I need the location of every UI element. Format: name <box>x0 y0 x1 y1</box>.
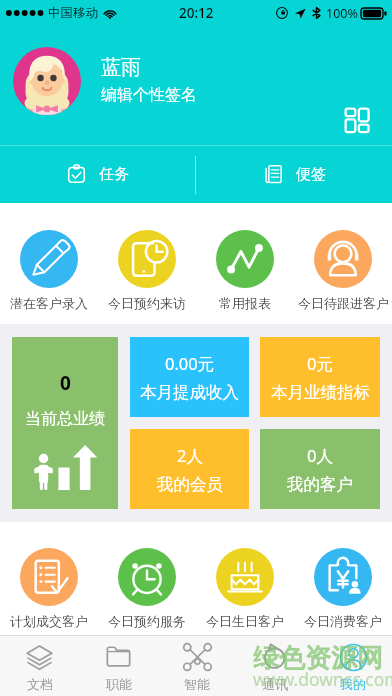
staticText: 中国移动 <box>48 5 98 21</box>
staticText: 本月提成收入 <box>140 382 239 403</box>
staticText: 我的 <box>340 676 366 692</box>
button[interactable]: 潜在客户录入 <box>0 230 98 311</box>
staticText: 蓝雨 <box>101 55 141 80</box>
staticText: 绿色资源网 <box>253 642 383 675</box>
staticText: 今日预约来访 <box>108 295 186 311</box>
staticText: 0元 <box>307 352 333 375</box>
staticText: 当前总业绩 <box>25 409 105 429</box>
button[interactable]: 智能 <box>158 636 236 696</box>
staticText: 0 <box>60 370 71 396</box>
button[interactable]: 0 <box>12 337 118 509</box>
button[interactable]: 任务 <box>0 146 195 203</box>
button[interactable]: 职能 <box>79 636 158 696</box>
staticText: 文档 <box>27 676 53 692</box>
button[interactable]: 计划成交客户 <box>0 548 98 629</box>
button[interactable]: 今日生日客户 <box>196 548 294 629</box>
staticText: 潜在客户录入 <box>10 295 88 311</box>
button[interactable]: 便签 <box>196 146 392 203</box>
staticText: 我的会员 <box>157 474 223 495</box>
staticText: 今日预约服务 <box>108 613 186 629</box>
staticText: 本月业绩指标 <box>271 382 370 403</box>
button[interactable]: 我的 <box>314 636 392 696</box>
staticText: 编辑个性签名 <box>101 85 197 105</box>
button[interactable]: 今日预约服务 <box>98 548 196 629</box>
button[interactable]: 常用报表 <box>196 230 294 311</box>
staticText: 20:12 <box>179 4 214 22</box>
staticText: 今日消费客户 <box>304 613 382 629</box>
staticText: www.downcc.com <box>253 667 392 691</box>
staticText: 我的客户 <box>287 474 353 495</box>
button[interactable]: 通讯 <box>236 636 314 696</box>
button[interactable]: 今日消费客户 <box>294 548 392 629</box>
staticText: 0人 <box>307 444 333 467</box>
staticText: 计划成交客户 <box>10 613 88 629</box>
button[interactable]: 0.00元 <box>130 337 249 417</box>
staticText: 常用报表 <box>219 295 271 311</box>
staticText: 职能 <box>106 676 132 692</box>
button[interactable]: 0元 <box>260 337 380 417</box>
button[interactable]: More apps <box>344 107 371 134</box>
staticText: 今日待跟进客户 <box>298 295 389 311</box>
staticText: 0.00元 <box>165 352 215 375</box>
button[interactable]: 0人 <box>260 429 380 509</box>
staticText: 2人 <box>177 444 203 467</box>
button[interactable]: 2人 <box>130 429 249 509</box>
staticText: 通讯 <box>262 676 288 692</box>
staticText: 任务 <box>99 165 129 184</box>
staticText: 便签 <box>296 165 326 184</box>
button[interactable]: 今日预约来访 <box>98 230 196 311</box>
staticText: 100% <box>326 5 358 22</box>
button[interactable]: 今日待跟进客户 <box>294 230 392 311</box>
staticText: 今日生日客户 <box>206 613 284 629</box>
button[interactable]: 文档 <box>0 636 79 696</box>
staticText: 智能 <box>184 676 210 692</box>
